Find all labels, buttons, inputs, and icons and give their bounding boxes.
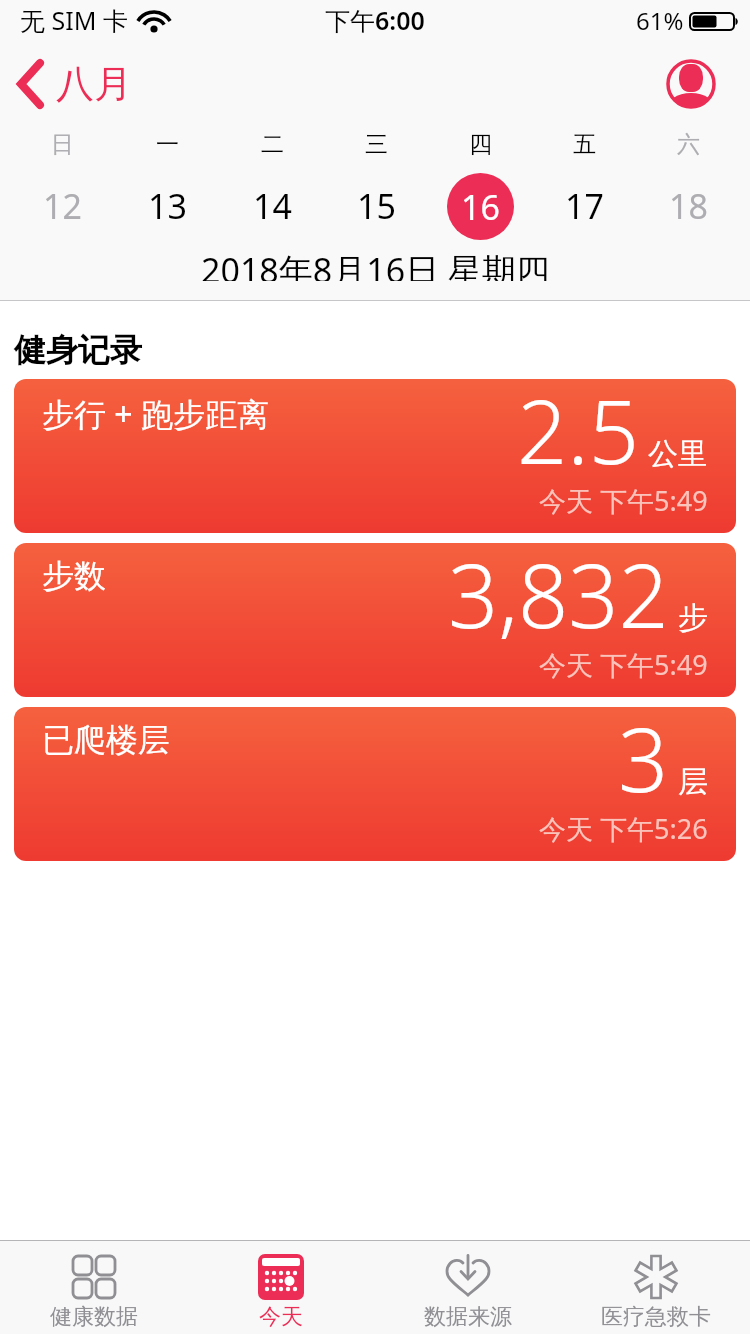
staticText: 日 xyxy=(51,130,74,159)
staticText: 健康数据 xyxy=(50,1303,138,1331)
staticText: 今天 xyxy=(259,1303,303,1331)
staticText: 数据来源 xyxy=(424,1303,512,1331)
staticText: 今天 下午5:49 xyxy=(539,482,708,519)
staticText: 16 xyxy=(461,184,500,230)
button[interactable]: 13 xyxy=(115,160,220,252)
staticText: 五 xyxy=(573,130,596,159)
staticText: 今天 下午5:49 xyxy=(539,646,708,683)
staticText: 无 SIM 卡 xyxy=(20,3,128,37)
staticText: 13 xyxy=(148,183,187,229)
staticText: 15 xyxy=(357,183,396,229)
staticText: 下午6:00 xyxy=(325,3,425,37)
staticText: 步行 + 跑步距离 xyxy=(42,392,269,436)
staticText: 18 xyxy=(669,183,708,229)
staticText: 14 xyxy=(253,183,292,229)
button[interactable]: 医疗急救卡 xyxy=(562,1241,750,1334)
staticText: 步 xyxy=(678,599,708,637)
button[interactable]: 17 xyxy=(532,160,636,252)
staticText: 步数 xyxy=(42,556,106,596)
button[interactable] xyxy=(666,59,716,109)
staticText: 医疗急救卡 xyxy=(601,1303,711,1331)
staticText: 3,832 xyxy=(448,543,669,654)
button[interactable]: 八月 xyxy=(16,60,132,108)
staticText: 八月 xyxy=(56,60,132,108)
staticText: 公里 xyxy=(648,435,708,473)
staticText: 12 xyxy=(43,183,82,229)
staticText: 17 xyxy=(565,183,604,229)
button[interactable]: 数据来源 xyxy=(374,1241,562,1334)
staticText: 2018年8月16日 星期四 xyxy=(201,247,550,281)
button[interactable]: 18 xyxy=(636,160,740,252)
staticText: 四 xyxy=(469,130,492,159)
button[interactable]: 健康数据 xyxy=(0,1241,187,1334)
button[interactable]: 16 xyxy=(428,160,532,252)
button[interactable]: 15 xyxy=(324,160,428,252)
staticText: 层 xyxy=(678,763,708,801)
button[interactable]: 12 xyxy=(10,160,115,252)
staticText: 今天 下午5:26 xyxy=(539,810,708,847)
button[interactable]: 14 xyxy=(220,160,324,252)
staticText: 六 xyxy=(677,130,700,159)
button[interactable]: 今天 xyxy=(187,1241,374,1334)
staticText: 三 xyxy=(365,130,388,159)
staticText: 健身记录 xyxy=(14,330,142,370)
button[interactable]: 步数 xyxy=(14,543,736,697)
staticText: 2.5 xyxy=(517,379,639,490)
staticText: 二 xyxy=(261,130,284,159)
staticText: 3 xyxy=(618,707,669,818)
button[interactable]: 步行 + 跑步距离 xyxy=(14,379,736,533)
staticText: 已爬楼层 xyxy=(42,720,170,760)
staticText: 61% xyxy=(636,4,684,37)
button[interactable]: 已爬楼层 xyxy=(14,707,736,861)
staticText: 一 xyxy=(156,130,179,159)
